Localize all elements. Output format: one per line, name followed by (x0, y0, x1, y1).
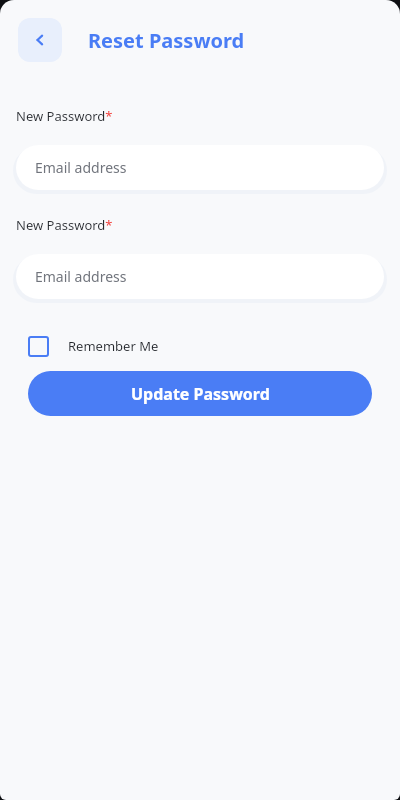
staticText: New Password* (16, 107, 113, 125)
staticText: Reset Password (88, 27, 245, 54)
staticText: Remember Me (68, 337, 159, 355)
staticText: Update Password (131, 383, 270, 405)
button[interactable]: Email address (16, 145, 384, 190)
staticText: New Password* (16, 216, 113, 234)
button[interactable]: Email address (16, 254, 384, 299)
staticText: Email address (35, 267, 127, 286)
button[interactable]: Update Password (28, 371, 372, 416)
button[interactable]: Remember Me (28, 332, 159, 360)
button[interactable]: Back (18, 18, 62, 62)
staticText: Email address (35, 158, 127, 177)
